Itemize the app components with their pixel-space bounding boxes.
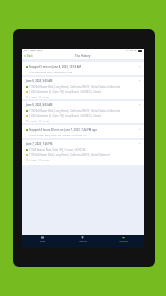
- staticText: 17340 Avalon Blvd, Suite 100, Carson, CA…: [29, 148, 86, 151]
- button[interactable]: Stopped 5 min on June 8, 2023, 10:18 AM: [22, 62, 144, 75]
- staticText: 11: [126, 49, 129, 52]
- staticText: Map: [40, 240, 45, 243]
- staticText: Stopped 4 hours 38 min on June 7, 2023, …: [29, 128, 97, 132]
- staticText: 2.7 mi: [42, 95, 49, 98]
- staticText: 9:41: [24, 49, 29, 52]
- staticText: 1190 Bellflower Blvd, Long Beach, Califo…: [29, 109, 121, 112]
- staticText: Jun 8: [37, 49, 43, 52]
- button[interactable]: June 8, 2023, 9:03 AM: [22, 77, 144, 99]
- button[interactable]: June 7, 2023, 7:26 PM: [22, 140, 144, 165]
- staticText: Trip History: [75, 54, 91, 58]
- button[interactable]: Stopped 4 hours 38 min on June 7, 2023, …: [22, 125, 144, 138]
- staticText: June 8, 2023, 8:03 AM: [26, 103, 53, 107]
- staticText: History: [79, 240, 87, 243]
- staticText: 11 min: [29, 95, 37, 98]
- staticText: 2.7 mi: [42, 158, 49, 161]
- staticText: 17340 Avalon Blvd, Suite 100, Carson, CA…: [29, 133, 87, 136]
- button[interactable]: Vehicles: [103, 235, 144, 243]
- other: Back: [24, 55, 26, 57]
- staticText: 2.7 mi: [42, 119, 49, 122]
- staticText: 1234 E Anaheim St, Suite 100, Long Beach…: [29, 114, 101, 117]
- staticText: 1190 Bellflower Blvd, Long Beach, Califo…: [29, 85, 121, 88]
- staticText: ull: [134, 49, 137, 52]
- button[interactable]: Map: [22, 235, 62, 243]
- staticText: June 7, 2023, 7:26 PM: [26, 142, 54, 146]
- staticText: 1190 Bellflower Blvd, Long Beach, Califo…: [29, 153, 110, 156]
- staticText: 4G: [130, 49, 133, 52]
- button[interactable]: June 8, 2023, 8:03 AM: [22, 101, 144, 123]
- button[interactable]: Back: [24, 54, 33, 58]
- staticText: 11 min: [29, 158, 37, 161]
- staticText: June 8, 2023, 9:03 AM: [26, 79, 53, 83]
- staticText: Back: [27, 54, 33, 58]
- staticText: 11 min: [29, 119, 37, 122]
- staticText: Vehicles: [119, 240, 128, 243]
- button[interactable]: History: [62, 235, 103, 243]
- staticText: Stopped 5 min on June 8, 2023, 10:18 AM: [29, 65, 82, 69]
- staticText: Maps: [30, 49, 36, 52]
- staticText: 1234 E Anaheim St, Suite 100, Long Beach…: [29, 90, 101, 93]
- staticText: 1190 Bellflower Blvd, Long Beach, Calif: [29, 70, 73, 73]
